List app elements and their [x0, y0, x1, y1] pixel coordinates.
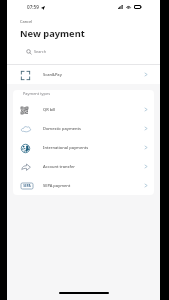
staticText: Search	[34, 49, 47, 54]
staticText: Account transfer	[43, 164, 75, 169]
staticText: Payment types	[23, 91, 51, 96]
staticText: Cancel	[20, 19, 33, 24]
button[interactable]: Search	[7, 46, 160, 57]
staticText: International payments	[43, 145, 89, 150]
staticText: New payment	[20, 27, 85, 40]
button[interactable]: Account transfer	[13, 157, 154, 176]
staticText: Domestic payments	[43, 126, 81, 131]
staticText: SEPA payment	[43, 183, 71, 188]
staticText: QR bill	[43, 107, 56, 112]
button[interactable]: SEPA	[13, 176, 154, 195]
staticText: SEPA	[23, 184, 31, 188]
button[interactable]: Domestic payments	[13, 119, 154, 138]
button[interactable]: QR bill	[13, 100, 154, 119]
staticText: Scan&Pay	[43, 72, 62, 77]
button[interactable]: International payments	[13, 138, 154, 157]
button[interactable]: Cancel	[7, 14, 160, 25]
button[interactable]: Scan&Pay	[7, 65, 160, 84]
staticText: 07:59	[27, 4, 39, 10]
